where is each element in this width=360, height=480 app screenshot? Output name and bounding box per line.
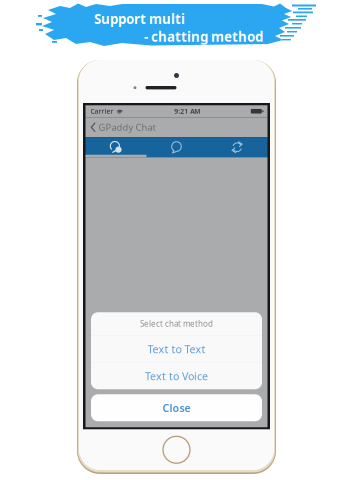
button[interactable]: Text chat (146, 137, 207, 157)
staticText: Support multi (94, 10, 185, 28)
staticText: 9:21 AM (174, 107, 200, 116)
staticText: Close (162, 401, 190, 415)
button[interactable]: Text to Text (91, 336, 262, 362)
staticText: Select chat method (140, 318, 213, 329)
button[interactable]: Refresh (207, 137, 267, 157)
staticText: Text to Text (147, 342, 205, 356)
button[interactable]: Voice chat (85, 137, 146, 157)
staticText: GPaddy Chat (99, 121, 156, 133)
button[interactable]: Text to Voice (91, 363, 262, 389)
staticText: - chatting method (144, 28, 263, 45)
button[interactable]: Close (91, 394, 262, 421)
staticText: Text to Voice (145, 369, 208, 383)
button[interactable]: GPaddy Chat (85, 117, 162, 137)
staticText: Carrier (90, 107, 113, 116)
